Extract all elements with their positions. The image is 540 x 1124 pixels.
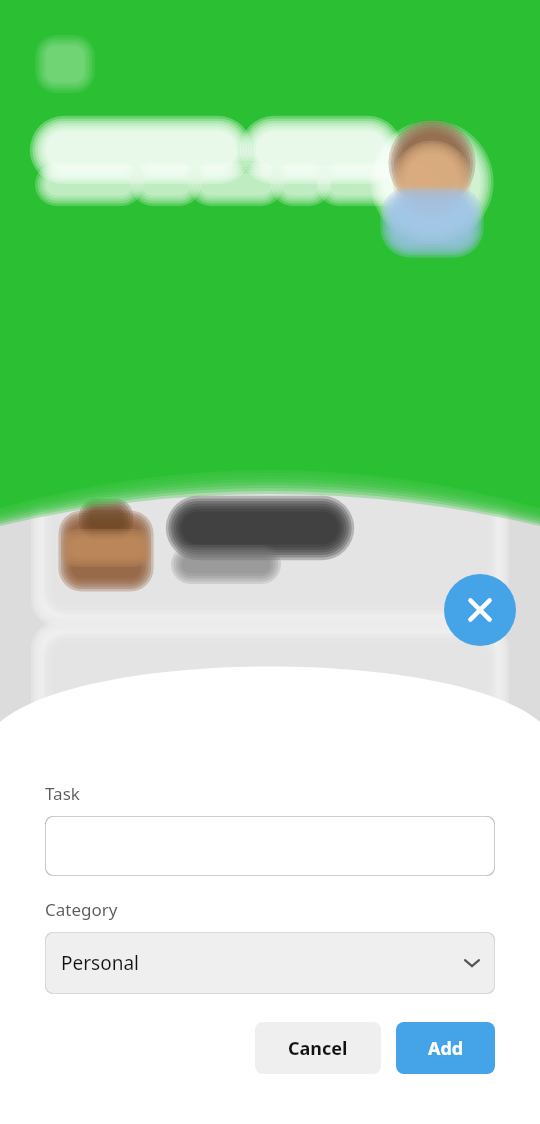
staticText: Task <box>45 782 80 805</box>
button[interactable]: Add <box>396 1022 495 1074</box>
staticText: Cancel <box>288 1036 348 1061</box>
staticText: Category <box>45 898 118 921</box>
staticText: Personal <box>61 950 139 976</box>
button[interactable]: Cancel <box>255 1022 381 1074</box>
button[interactable] <box>45 816 495 876</box>
button[interactable]: Personal <box>45 932 495 994</box>
staticText: Add <box>428 1036 464 1061</box>
button[interactable]: Close <box>444 574 516 646</box>
